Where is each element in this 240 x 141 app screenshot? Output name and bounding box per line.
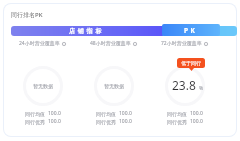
staticText: 100.0 [119, 118, 132, 125]
staticText: 同行优秀 [25, 119, 45, 125]
button[interactable]: PK [162, 24, 220, 36]
button[interactable]: 48小时营业覆盖率 [90, 40, 137, 47]
button[interactable]: 24小时营业覆盖率 [19, 40, 66, 47]
button[interactable]: 72小时营业覆盖率 [161, 40, 208, 47]
button[interactable]: 店铺指标 [11, 26, 163, 36]
staticText: 100.0 [119, 110, 132, 117]
staticText: 23.8 [172, 77, 196, 93]
staticText: 店铺指标 [69, 27, 105, 35]
staticText: 暂无数据 [104, 83, 124, 89]
staticText: 同行均值 [96, 111, 116, 117]
staticText: 同行优秀 [96, 119, 116, 125]
staticText: 低于同行 [181, 60, 201, 66]
other: 说明 [204, 42, 208, 46]
staticText: 同行均值 [167, 111, 187, 117]
staticText: 72小时营业覆盖率 [161, 40, 202, 47]
staticText: 24小时营业覆盖率 [19, 40, 60, 47]
staticText: % [199, 85, 204, 92]
staticText: PK [184, 26, 198, 35]
other: 说明 [62, 42, 66, 46]
staticText: 暂无数据 [33, 83, 53, 89]
button[interactable]: 低于同行 [177, 58, 205, 68]
other: 说明 [133, 42, 137, 46]
staticText: 100.0 [48, 110, 61, 117]
staticText: 48小时营业覆盖率 [90, 40, 131, 47]
staticText: 同行优秀 [167, 119, 187, 125]
staticText: 同行均值 [25, 111, 45, 117]
staticText: 同行排名PK [11, 11, 43, 19]
staticText: 100.0 [190, 118, 203, 125]
staticText: 100.0 [190, 110, 203, 117]
staticText: 100.0 [48, 118, 61, 125]
